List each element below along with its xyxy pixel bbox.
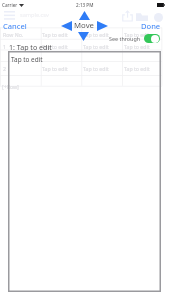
- staticText: 1: Tap to edit: [9, 42, 52, 52]
- button[interactable]: Share: [122, 10, 133, 21]
- button[interactable]: See through: [109, 34, 160, 43]
- staticText: Tap to edit: [83, 31, 109, 38]
- staticText: Tap to edit: [42, 43, 68, 50]
- staticText: Tap to edit: [83, 43, 109, 50]
- button[interactable]: Help: [154, 13, 163, 22]
- button[interactable]: Menu: [4, 11, 15, 20]
- staticText: sample.csv: [20, 11, 49, 19]
- staticText: Done: [141, 21, 161, 31]
- button[interactable]: Tap to edit: [11, 55, 43, 64]
- staticText: Tap to edit: [11, 55, 43, 64]
- staticText: 2: [3, 65, 6, 72]
- staticText: [+Row]: [2, 83, 19, 90]
- staticText: 2:13 PM: [76, 2, 94, 8]
- staticText: Move: [74, 20, 94, 31]
- button[interactable]: Move right: [97, 21, 108, 31]
- button[interactable]: Done: [141, 21, 161, 31]
- button[interactable]: Files: [136, 12, 148, 21]
- button[interactable]: Move down: [78, 32, 89, 41]
- staticText: Tap to edit: [83, 65, 109, 72]
- button[interactable]: Cancel: [3, 21, 27, 31]
- staticText: See through: [109, 35, 141, 42]
- button[interactable]: Move up: [79, 11, 90, 20]
- staticText: 1: [3, 43, 6, 50]
- staticText: Tap to edit: [124, 31, 150, 38]
- staticText: Tap to edit: [42, 65, 68, 72]
- staticText: Tap to edit: [42, 31, 68, 38]
- staticText: Cancel: [3, 21, 27, 31]
- button[interactable]: Move left: [61, 21, 72, 31]
- staticText: Carrier: [2, 2, 18, 8]
- staticText: Row No.: [3, 31, 24, 38]
- staticText: Tap to edit: [124, 65, 150, 72]
- staticText: Tap to edit: [124, 43, 150, 50]
